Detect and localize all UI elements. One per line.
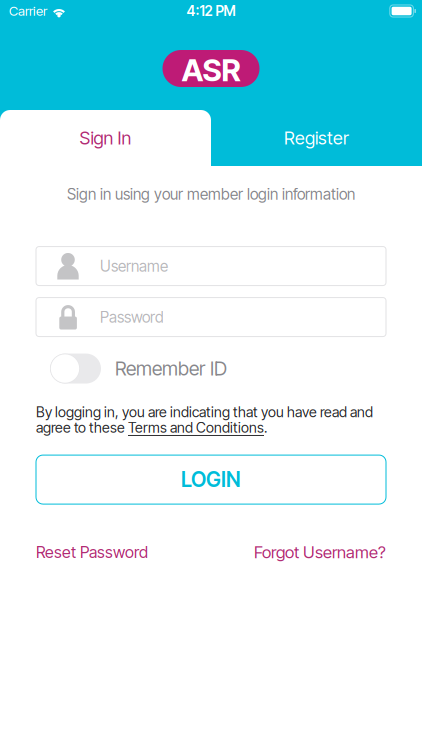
staticText: Remember ID [115,357,227,380]
staticText: . [264,419,267,436]
button[interactable]: Reset Password [36,537,148,567]
button[interactable]: Sign In [0,110,211,166]
staticText: Carrier [9,3,47,19]
staticText: Register [284,127,349,149]
staticText: Terms and Conditions [128,419,264,436]
staticText: agree to these [36,419,128,436]
staticText: Reset Password [36,542,148,562]
staticText: By logging in, you are indicating that y… [36,404,373,421]
button[interactable]: Forgot Username? [254,537,386,567]
button[interactable]: LOGIN [36,455,386,504]
staticText: Forgot Username? [254,542,386,562]
staticText: Username [100,257,168,275]
button[interactable]: Remember ID [50,354,101,384]
button[interactable]: Terms and Conditions [128,419,264,436]
staticText: Sign In [79,127,131,149]
staticText: ASR [181,51,240,88]
staticText: Password [100,308,164,326]
staticText: LOGIN [181,467,241,492]
staticText: Sign in using your member login informat… [67,185,355,204]
button[interactable]: Register [211,110,422,166]
staticText: 4:12 PM [186,2,235,19]
